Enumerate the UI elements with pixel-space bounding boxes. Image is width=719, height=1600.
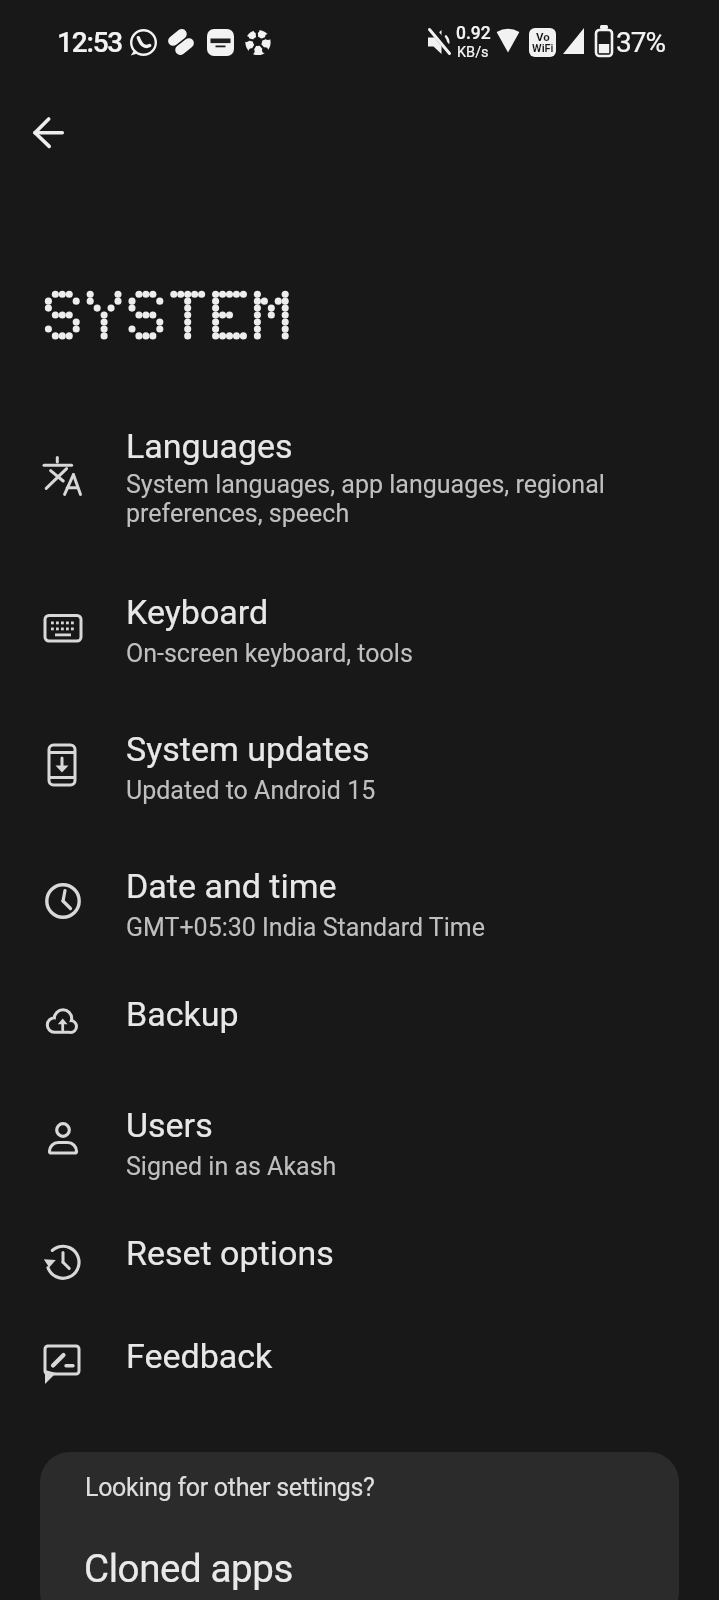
button[interactable]: Backup [0,971,719,1074]
button[interactable]: Users [0,1074,719,1212]
staticText: GMT+05:30 India Standard Time [126,913,485,942]
staticText: Cloned apps [84,1546,293,1591]
button[interactable]: Keyboard [0,556,719,696]
staticText: On-screen keyboard, tools [126,639,413,668]
staticText: 12:53 [57,26,123,59]
button[interactable]: Languages [0,410,719,556]
staticText: Backup [126,994,239,1034]
staticText: 0.92 [456,23,491,44]
staticText: Feedback [126,1336,273,1376]
staticText: Vo [536,30,550,43]
staticText: Languages [126,426,293,466]
staticText: Looking for other settings? [85,1473,375,1502]
button[interactable]: Reset options [0,1212,719,1313]
staticText: Signed in as Akash [126,1152,337,1181]
button[interactable]: Feedback [0,1313,719,1416]
staticText: System languages, app languages, regiona… [126,470,605,528]
button[interactable]: Looking for other settings? [40,1452,679,1600]
staticText: System updates [126,729,370,769]
staticText: Users [126,1105,213,1145]
staticText: Updated to Android 15 [126,776,376,805]
staticText: Reset options [126,1233,334,1273]
button[interactable]: System updates [0,696,719,833]
staticText: WiFi [532,42,554,55]
staticText: KB/s [457,44,489,61]
staticText: 37% [616,26,665,59]
button[interactable] [21,118,77,174]
staticText: Date and time [126,866,337,906]
staticText: Keyboard [126,592,269,632]
button[interactable]: Date and time [0,833,719,971]
